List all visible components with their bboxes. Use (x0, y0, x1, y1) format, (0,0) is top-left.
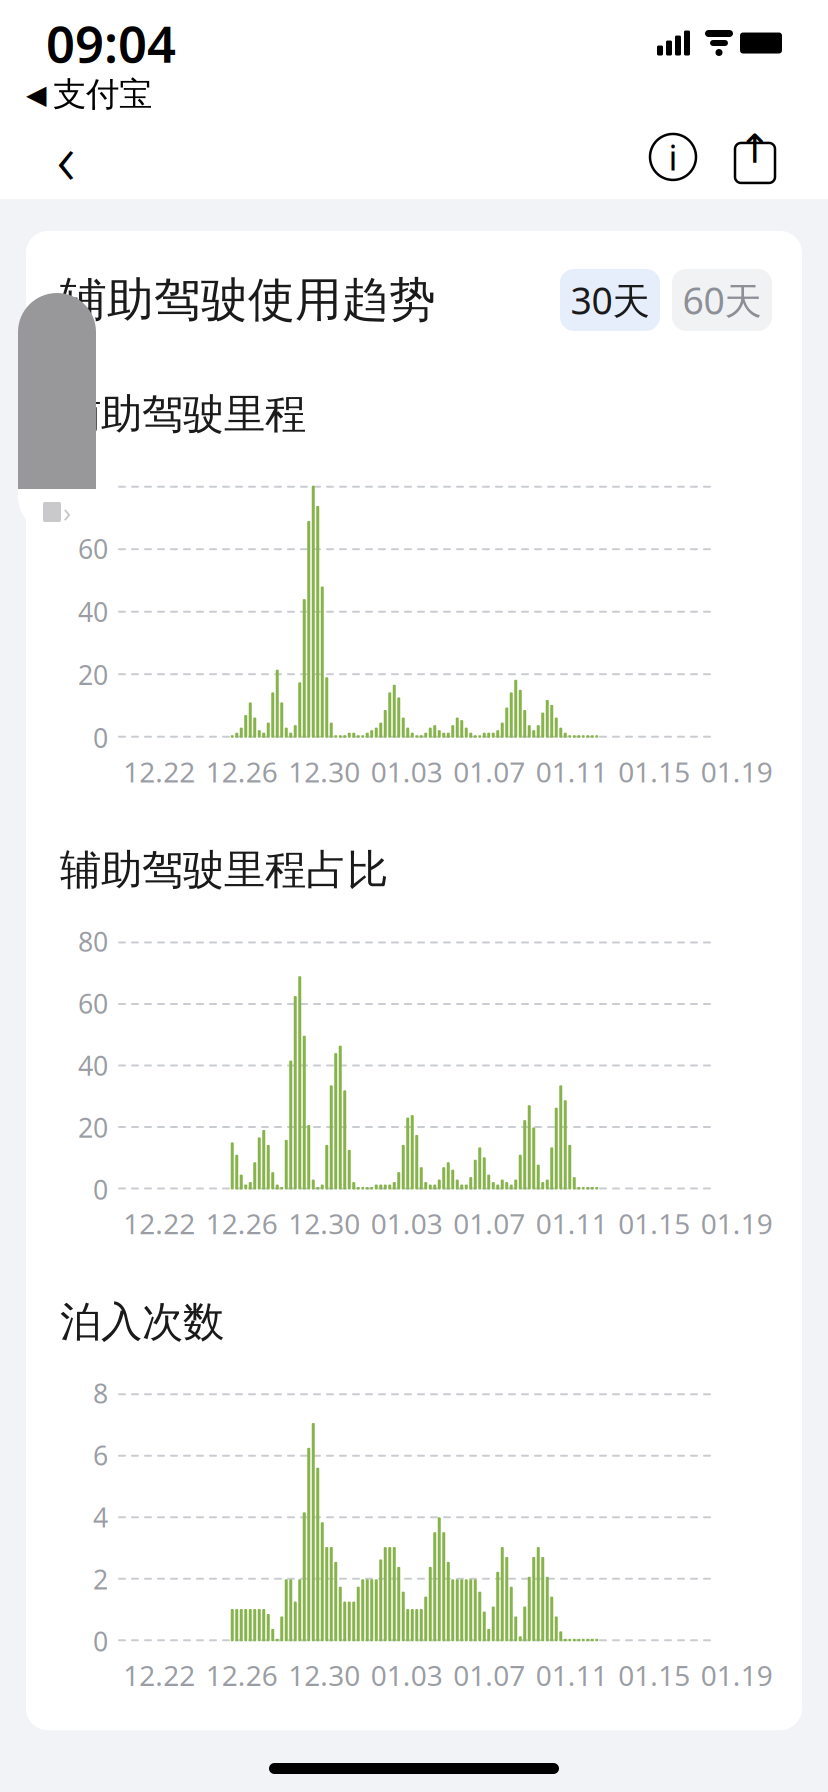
button[interactable]: Back (30, 121, 102, 193)
staticText: 辅助驾驶使用趋势 (60, 271, 436, 329)
staticText: › (63, 494, 71, 530)
staticText: 12.22 (123, 1657, 195, 1694)
staticText: 01.07 (453, 1205, 525, 1242)
staticText: 60 (78, 986, 108, 1021)
staticText: 60天 (682, 275, 761, 325)
staticText: 0 (93, 720, 108, 755)
staticText: 01.11 (536, 1205, 608, 1242)
staticText: 40 (78, 1048, 108, 1083)
staticText: ‹ (56, 109, 75, 205)
staticText: 12.22 (123, 1205, 195, 1242)
button[interactable]: 30天 (560, 269, 660, 331)
staticText: 01.03 (371, 753, 443, 790)
staticText: 01.15 (618, 1657, 690, 1694)
staticText: 01.03 (371, 1657, 443, 1694)
staticText: 支付宝 (53, 74, 152, 115)
staticText: 01.11 (536, 1657, 608, 1694)
staticText: 20 (78, 657, 108, 692)
staticText: 01.07 (453, 1657, 525, 1694)
staticText: 01.19 (701, 753, 773, 790)
staticText: 80 (78, 924, 108, 959)
staticText: 01.07 (453, 753, 525, 790)
staticText: 60 (78, 531, 108, 566)
staticText: 01.19 (701, 1657, 773, 1694)
staticText: 01.11 (536, 753, 608, 790)
staticText: 01.15 (618, 753, 690, 790)
staticText: 01.19 (701, 1205, 773, 1242)
staticText: 01.03 (371, 1205, 443, 1242)
staticText: 2 (93, 1561, 108, 1597)
staticText: 20 (78, 1110, 108, 1145)
staticText: 0 (93, 1623, 108, 1659)
button[interactable]: Information (640, 124, 706, 190)
staticText: 30天 (570, 275, 649, 325)
staticText: 0 (93, 1172, 108, 1207)
staticText: 12.22 (123, 753, 195, 790)
staticText: 12.30 (288, 1205, 360, 1242)
staticText: 01.15 (618, 1205, 690, 1242)
staticText: 09:04 (46, 9, 176, 77)
staticText: 12.26 (206, 1205, 278, 1242)
staticText: 12.26 (206, 1657, 278, 1694)
staticText: 辅助驾驶里程 (60, 389, 306, 440)
staticText: ◀ (26, 79, 47, 110)
staticText: 40 (78, 594, 108, 629)
staticText: 辅助驾驶里程占比 (60, 845, 388, 895)
button[interactable]: Share (722, 122, 788, 192)
staticText: ↑ (738, 126, 772, 172)
button[interactable]: 60天 (672, 269, 772, 331)
staticText: 12.26 (206, 753, 278, 790)
staticText: i (668, 134, 677, 180)
staticText: 6 (93, 1437, 108, 1473)
staticText: 8 (93, 1375, 108, 1411)
staticText: 泊入次数 (60, 1296, 224, 1347)
staticText: 12.30 (288, 1657, 360, 1694)
staticText: 12.30 (288, 753, 360, 790)
staticText: 4 (93, 1499, 108, 1535)
